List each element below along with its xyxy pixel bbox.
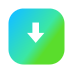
button[interactable]: Download: [8, 8, 64, 64]
